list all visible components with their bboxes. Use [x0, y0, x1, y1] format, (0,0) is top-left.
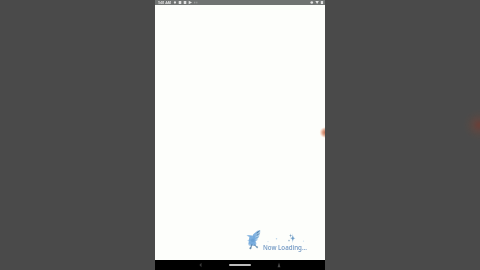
- staticText: Now Loading...: [263, 243, 307, 251]
- button[interactable]: Recent apps: [274, 260, 284, 270]
- button[interactable]: Home: [225, 260, 255, 270]
- button[interactable]: Back: [196, 260, 206, 270]
- staticText: 1:01 AM: [158, 0, 171, 5]
